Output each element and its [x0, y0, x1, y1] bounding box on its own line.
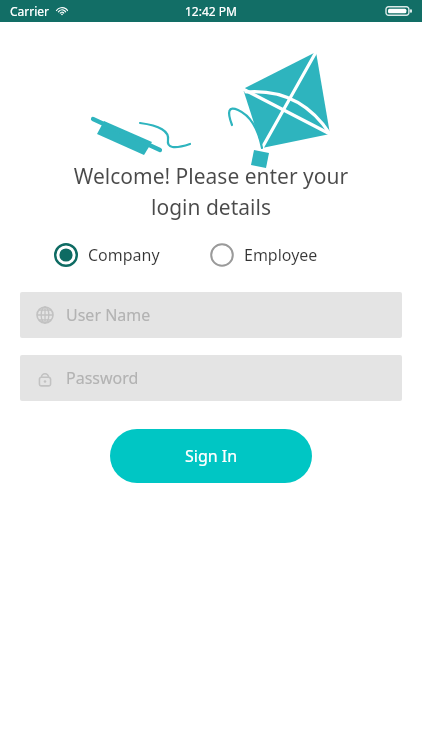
staticText: Employee	[244, 244, 318, 266]
staticText: 12:42 PM	[185, 3, 237, 19]
staticText: Sign In	[185, 445, 238, 467]
button[interactable]: User Name	[20, 292, 402, 338]
button[interactable]: Sign In	[110, 429, 312, 483]
staticText: Welcome! Please enter your login details	[20, 162, 402, 221]
staticText: Company	[88, 244, 160, 266]
button[interactable]: Password	[20, 355, 402, 401]
staticText: Password	[66, 367, 139, 389]
staticText: User Name	[66, 304, 151, 326]
staticText: Carrier	[10, 3, 50, 19]
button[interactable]: Employee	[208, 239, 320, 271]
button[interactable]: Company	[52, 239, 162, 271]
